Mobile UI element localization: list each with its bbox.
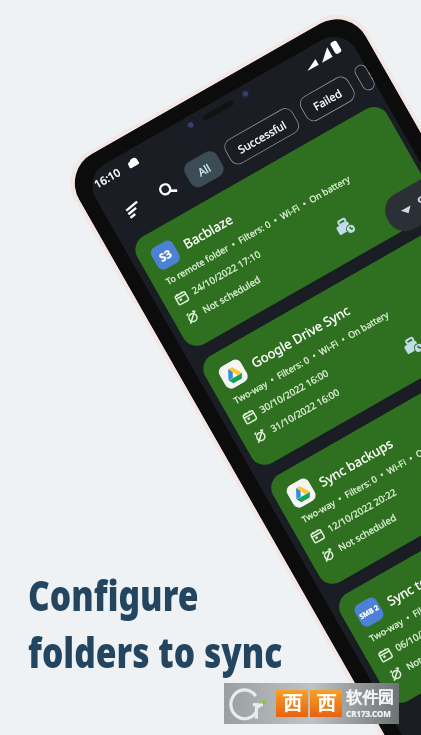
staticText: SMB 2 <box>358 603 381 622</box>
staticText: Failed <box>310 85 345 113</box>
staticText: Bacblaze <box>180 210 237 253</box>
button[interactable]: Syncing <box>352 62 377 93</box>
staticText: Not scheduled <box>404 630 421 673</box>
staticText: 12/10/2022 20:22 <box>325 485 399 535</box>
button[interactable]: Successful <box>221 105 302 168</box>
staticText: Successful <box>235 117 289 157</box>
staticText: All <box>195 160 213 179</box>
button[interactable]: Sync backups <box>265 339 421 590</box>
staticText: Two-way • Filters: 0 • Wi-Fi • On batter… <box>367 546 421 644</box>
button[interactable]: Failed <box>296 73 358 125</box>
button[interactable]: S3 <box>130 101 421 352</box>
staticText: Configure <box>28 566 199 623</box>
staticText: 06/10/2022 10:22 <box>393 604 421 654</box>
staticText: Sync to remote <box>383 548 421 610</box>
button[interactable]: SMB 2 <box>333 458 421 709</box>
button[interactable]: All <box>181 148 227 191</box>
staticText: S3 <box>156 245 175 265</box>
staticText: Sync backups <box>316 434 397 491</box>
button[interactable]: Google Drive Sync <box>197 220 421 471</box>
staticText: 30/10/2022 16:00 <box>257 366 331 416</box>
staticText: 31/10/2022 16:00 <box>268 385 342 435</box>
staticText: 西 <box>317 692 336 716</box>
button[interactable]: Sync all <box>378 175 421 238</box>
staticText: 24/10/2022 17:10 <box>189 247 263 297</box>
staticText: 16:10 <box>91 164 124 191</box>
staticText: Sync all <box>414 184 421 212</box>
staticText: Not scheduled <box>200 273 263 316</box>
button[interactable]: Search <box>147 169 188 210</box>
staticText: CR173.COM <box>346 708 391 719</box>
staticText: 西 <box>283 692 302 716</box>
staticText: 软件园 <box>346 688 394 708</box>
staticText: Two-way • Filters: 0 • Wi-Fi • On batter… <box>231 308 391 406</box>
button[interactable]: Sort <box>113 189 154 230</box>
staticText: folders to sync <box>28 623 283 680</box>
staticText: Google Drive Sync <box>248 301 353 372</box>
staticText: Two-way • Filters: 0 • Wi-Fi • On batter… <box>299 427 421 525</box>
staticText: Not scheduled <box>336 511 399 554</box>
staticText: To remote folder • Filters: 0 • Wi-Fi • … <box>163 172 352 287</box>
